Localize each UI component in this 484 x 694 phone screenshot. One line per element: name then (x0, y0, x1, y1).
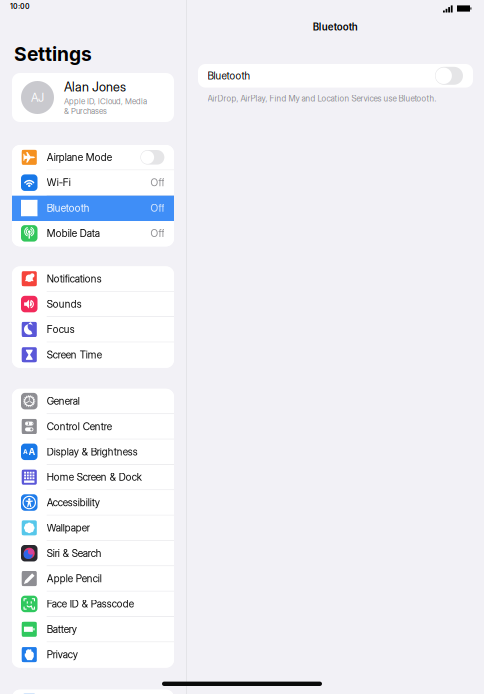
button[interactable]: Privacy (12, 642, 174, 668)
staticText: Bluetooth (47, 202, 90, 214)
button[interactable]: Battery (12, 617, 174, 642)
staticText: Home Screen & Dock (47, 471, 142, 483)
button[interactable]: AJ (12, 73, 174, 122)
staticText: Apple ID, iCloud, Media (64, 96, 147, 106)
button[interactable]: Wallpaper (12, 515, 174, 541)
button[interactable]: App Store (12, 690, 174, 694)
button[interactable]: Apple Pencil (12, 566, 174, 592)
button[interactable]: Airplane Mode (12, 145, 174, 170)
button[interactable]: Control Centre (12, 414, 174, 439)
staticText: Privacy (47, 648, 78, 661)
staticText: Display & Brightness (47, 446, 138, 458)
staticText: AirDrop, AirPlay, Find My and Location S… (207, 94, 436, 104)
staticText: A (28, 446, 35, 457)
staticText: Bluetooth (313, 21, 358, 33)
button[interactable]: Bluetooth (198, 64, 473, 88)
staticText: 10:00 (10, 2, 30, 11)
staticText: & Purchases (64, 106, 107, 116)
button[interactable]: Wi-Fi (12, 170, 174, 196)
staticText: Siri & Search (47, 547, 102, 559)
button[interactable]: A (12, 439, 174, 465)
staticText: Control Centre (47, 420, 112, 433)
button[interactable]: Siri & Search (12, 541, 174, 566)
staticText: AJ (31, 91, 44, 104)
staticText: Battery (47, 623, 77, 635)
staticText: Sounds (47, 298, 82, 310)
button[interactable]: General (12, 389, 174, 414)
staticText: Focus (47, 323, 75, 336)
staticText: Mobile Data (47, 227, 100, 239)
staticText: Alan Jones (64, 79, 126, 94)
button[interactable]: Accessibility (12, 490, 174, 516)
staticText: Apple Pencil (47, 572, 102, 585)
button[interactable]: Face ID & Passcode (12, 592, 174, 617)
staticText: Off (150, 202, 164, 214)
staticText: Accessibility (47, 496, 100, 509)
button[interactable]: Notifications (12, 266, 174, 292)
staticText: Face ID & Passcode (47, 598, 134, 610)
button[interactable]: Screen Time (12, 342, 174, 368)
staticText: A (23, 448, 28, 456)
button[interactable]: Bluetooth (12, 196, 174, 221)
staticText: Wi-Fi (47, 176, 71, 189)
staticText: Off (150, 227, 164, 239)
button[interactable]: Mobile Data (12, 221, 174, 246)
button[interactable]: Focus (12, 317, 174, 342)
staticText: Bluetooth (207, 70, 250, 82)
staticText: Wallpaper (47, 522, 90, 534)
button[interactable]: Home Screen & Dock (12, 465, 174, 490)
button[interactable]: Sounds (12, 292, 174, 317)
staticText: Settings (14, 42, 92, 66)
staticText: General (47, 395, 80, 407)
staticText: Notifications (47, 273, 102, 285)
staticText: Screen Time (47, 349, 102, 361)
staticText: Airplane Mode (47, 151, 112, 163)
staticText: Off (150, 176, 164, 189)
